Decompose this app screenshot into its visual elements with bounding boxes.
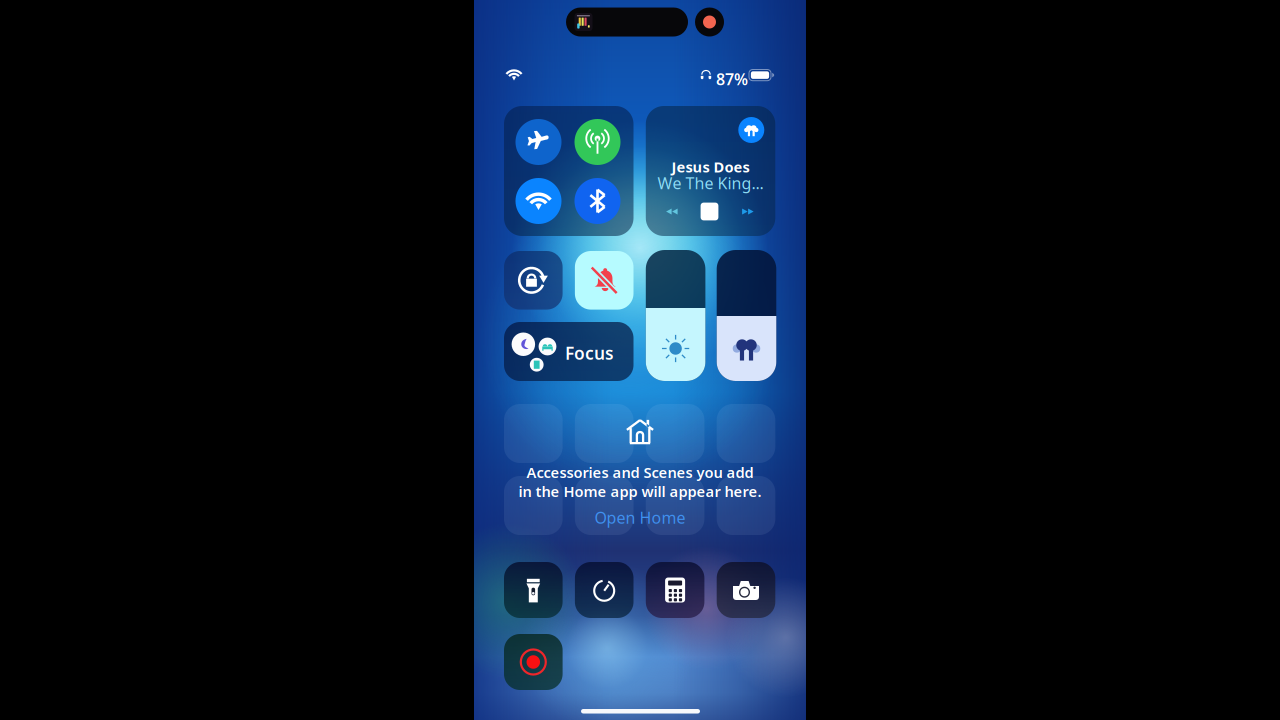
staticText: Jesus Does [671,157,749,176]
button[interactable]: Cellular Data [574,119,620,165]
staticText: We The King... [657,172,763,194]
button[interactable]: Flashlight [504,562,563,618]
button[interactable]: Open Home [474,507,806,528]
button[interactable]: Rewind [656,199,688,224]
button[interactable]: Audio Output [738,117,764,143]
button[interactable]: Timer [575,562,633,618]
button[interactable]: Stop [695,197,724,226]
staticText: in the Home app will appear here. [518,481,761,501]
button[interactable]: Screen Recording [504,634,563,690]
button[interactable]: Focus [504,322,633,381]
button[interactable]: Fast Forward [732,199,764,224]
button[interactable]: Bluetooth [574,178,620,224]
staticText: Open Home [594,507,685,528]
staticText: 87% [716,68,748,90]
button[interactable]: Volume [717,250,776,381]
button[interactable]: Wi-Fi [515,178,561,224]
button[interactable]: Silent Mode [575,251,633,310]
staticText: Focus [565,341,614,364]
button[interactable]: Brightness [646,250,705,381]
button[interactable]: Camera [717,562,775,618]
button[interactable]: Airplane Mode [515,119,561,165]
button[interactable]: Rotation Lock [504,251,563,310]
staticText: Accessories and Scenes you add [526,462,753,482]
button[interactable]: Calculator [646,562,704,618]
